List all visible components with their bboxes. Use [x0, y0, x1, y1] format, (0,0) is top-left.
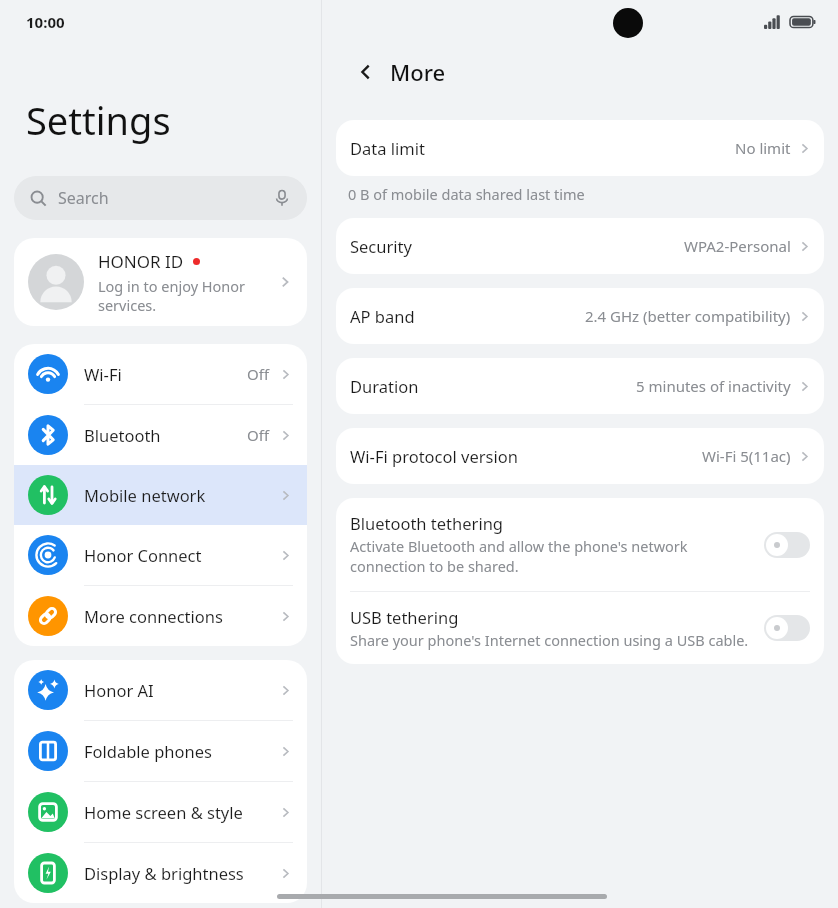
staticText: AP band [350, 305, 415, 327]
staticText: Off [247, 364, 270, 384]
button[interactable]: Bluetooth tethering [336, 498, 824, 591]
staticText: More connections [84, 605, 223, 627]
staticText: Off [247, 425, 270, 445]
staticText: More [390, 57, 446, 87]
staticText: Bluetooth [84, 424, 161, 446]
staticText: Mobile network [84, 484, 206, 506]
staticText: Bluetooth tethering [350, 512, 503, 534]
button[interactable]: Bluetooth tethering [764, 532, 810, 558]
button[interactable]: Wi-Fi [14, 344, 307, 404]
staticText: Wi-Fi 5(11ac) [702, 446, 791, 466]
staticText: Display & brightness [84, 862, 244, 884]
staticText: Security [350, 235, 412, 257]
staticText: Honor AI [84, 679, 154, 701]
button[interactable]: Wi-Fi protocol version [336, 428, 824, 484]
staticText: Foldable phones [84, 740, 212, 762]
staticText: No limit [735, 138, 791, 158]
button[interactable]: Home screen & style [14, 782, 307, 842]
button[interactable]: Mobile network [14, 465, 307, 525]
button[interactable]: Display & brightness [14, 843, 307, 903]
staticText: 5 minutes of inactivity [636, 376, 791, 396]
button[interactable]: Search [14, 176, 307, 220]
staticText: USB tethering [350, 606, 459, 628]
staticText: Wi-Fi [84, 363, 122, 385]
staticText: Data limit [350, 137, 425, 159]
staticText: Search [58, 187, 109, 209]
staticText: Duration [350, 375, 419, 397]
staticText: 0 B of mobile data shared last time [348, 184, 585, 204]
staticText: Share your phone's Internet connection u… [350, 630, 749, 650]
staticText: Settings [26, 94, 171, 146]
staticText: Wi-Fi protocol version [350, 445, 518, 467]
button[interactable]: Honor Connect [14, 525, 307, 585]
button[interactable]: USB tethering [336, 592, 824, 664]
staticText: 2.4 GHz (better compatibility) [585, 306, 791, 326]
button[interactable]: Bluetooth [14, 405, 307, 465]
button[interactable]: Back [348, 54, 384, 90]
staticText: Log in to enjoy Honor services. [98, 276, 271, 315]
staticText: Activate Bluetooth and allow the phone's… [350, 536, 752, 577]
button[interactable]: AP band [336, 288, 824, 344]
staticText: Home screen & style [84, 801, 243, 823]
staticText: 10:00 [26, 12, 65, 32]
button[interactable]: USB tethering [764, 615, 810, 641]
button[interactable]: Security [336, 218, 824, 274]
button[interactable]: Data limit [336, 120, 824, 176]
button[interactable]: More connections [14, 586, 307, 646]
button[interactable]: Duration [336, 358, 824, 414]
staticText: HONOR ID [98, 250, 184, 273]
button[interactable]: Foldable phones [14, 721, 307, 781]
button[interactable]: HONOR ID [14, 238, 307, 326]
staticText: Honor Connect [84, 544, 202, 566]
staticText: WPA2-Personal [684, 236, 791, 256]
button[interactable]: Honor AI [14, 660, 307, 720]
